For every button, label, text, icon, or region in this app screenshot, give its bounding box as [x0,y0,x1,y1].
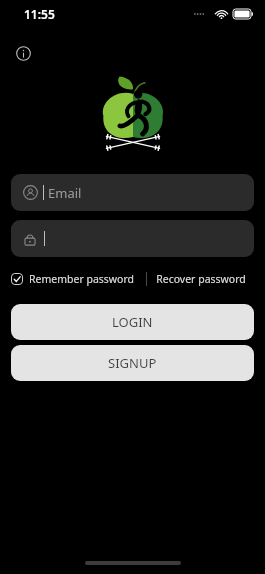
staticText: Remember password [29,272,135,286]
button[interactable]: LOGIN [11,304,254,340]
staticText: LOGIN [112,313,153,331]
staticText: Email [48,184,82,202]
button[interactable]: Remember password [11,270,135,288]
button[interactable]: SIGNUP [11,345,254,381]
button[interactable]: Email [11,174,254,211]
staticText: SIGNUP [108,354,157,372]
button[interactable]: Recover password [147,268,254,290]
button[interactable] [11,220,254,257]
staticText: 11:55 [24,6,55,22]
button[interactable]: Information [8,38,38,68]
staticText: Recover password [156,272,246,286]
